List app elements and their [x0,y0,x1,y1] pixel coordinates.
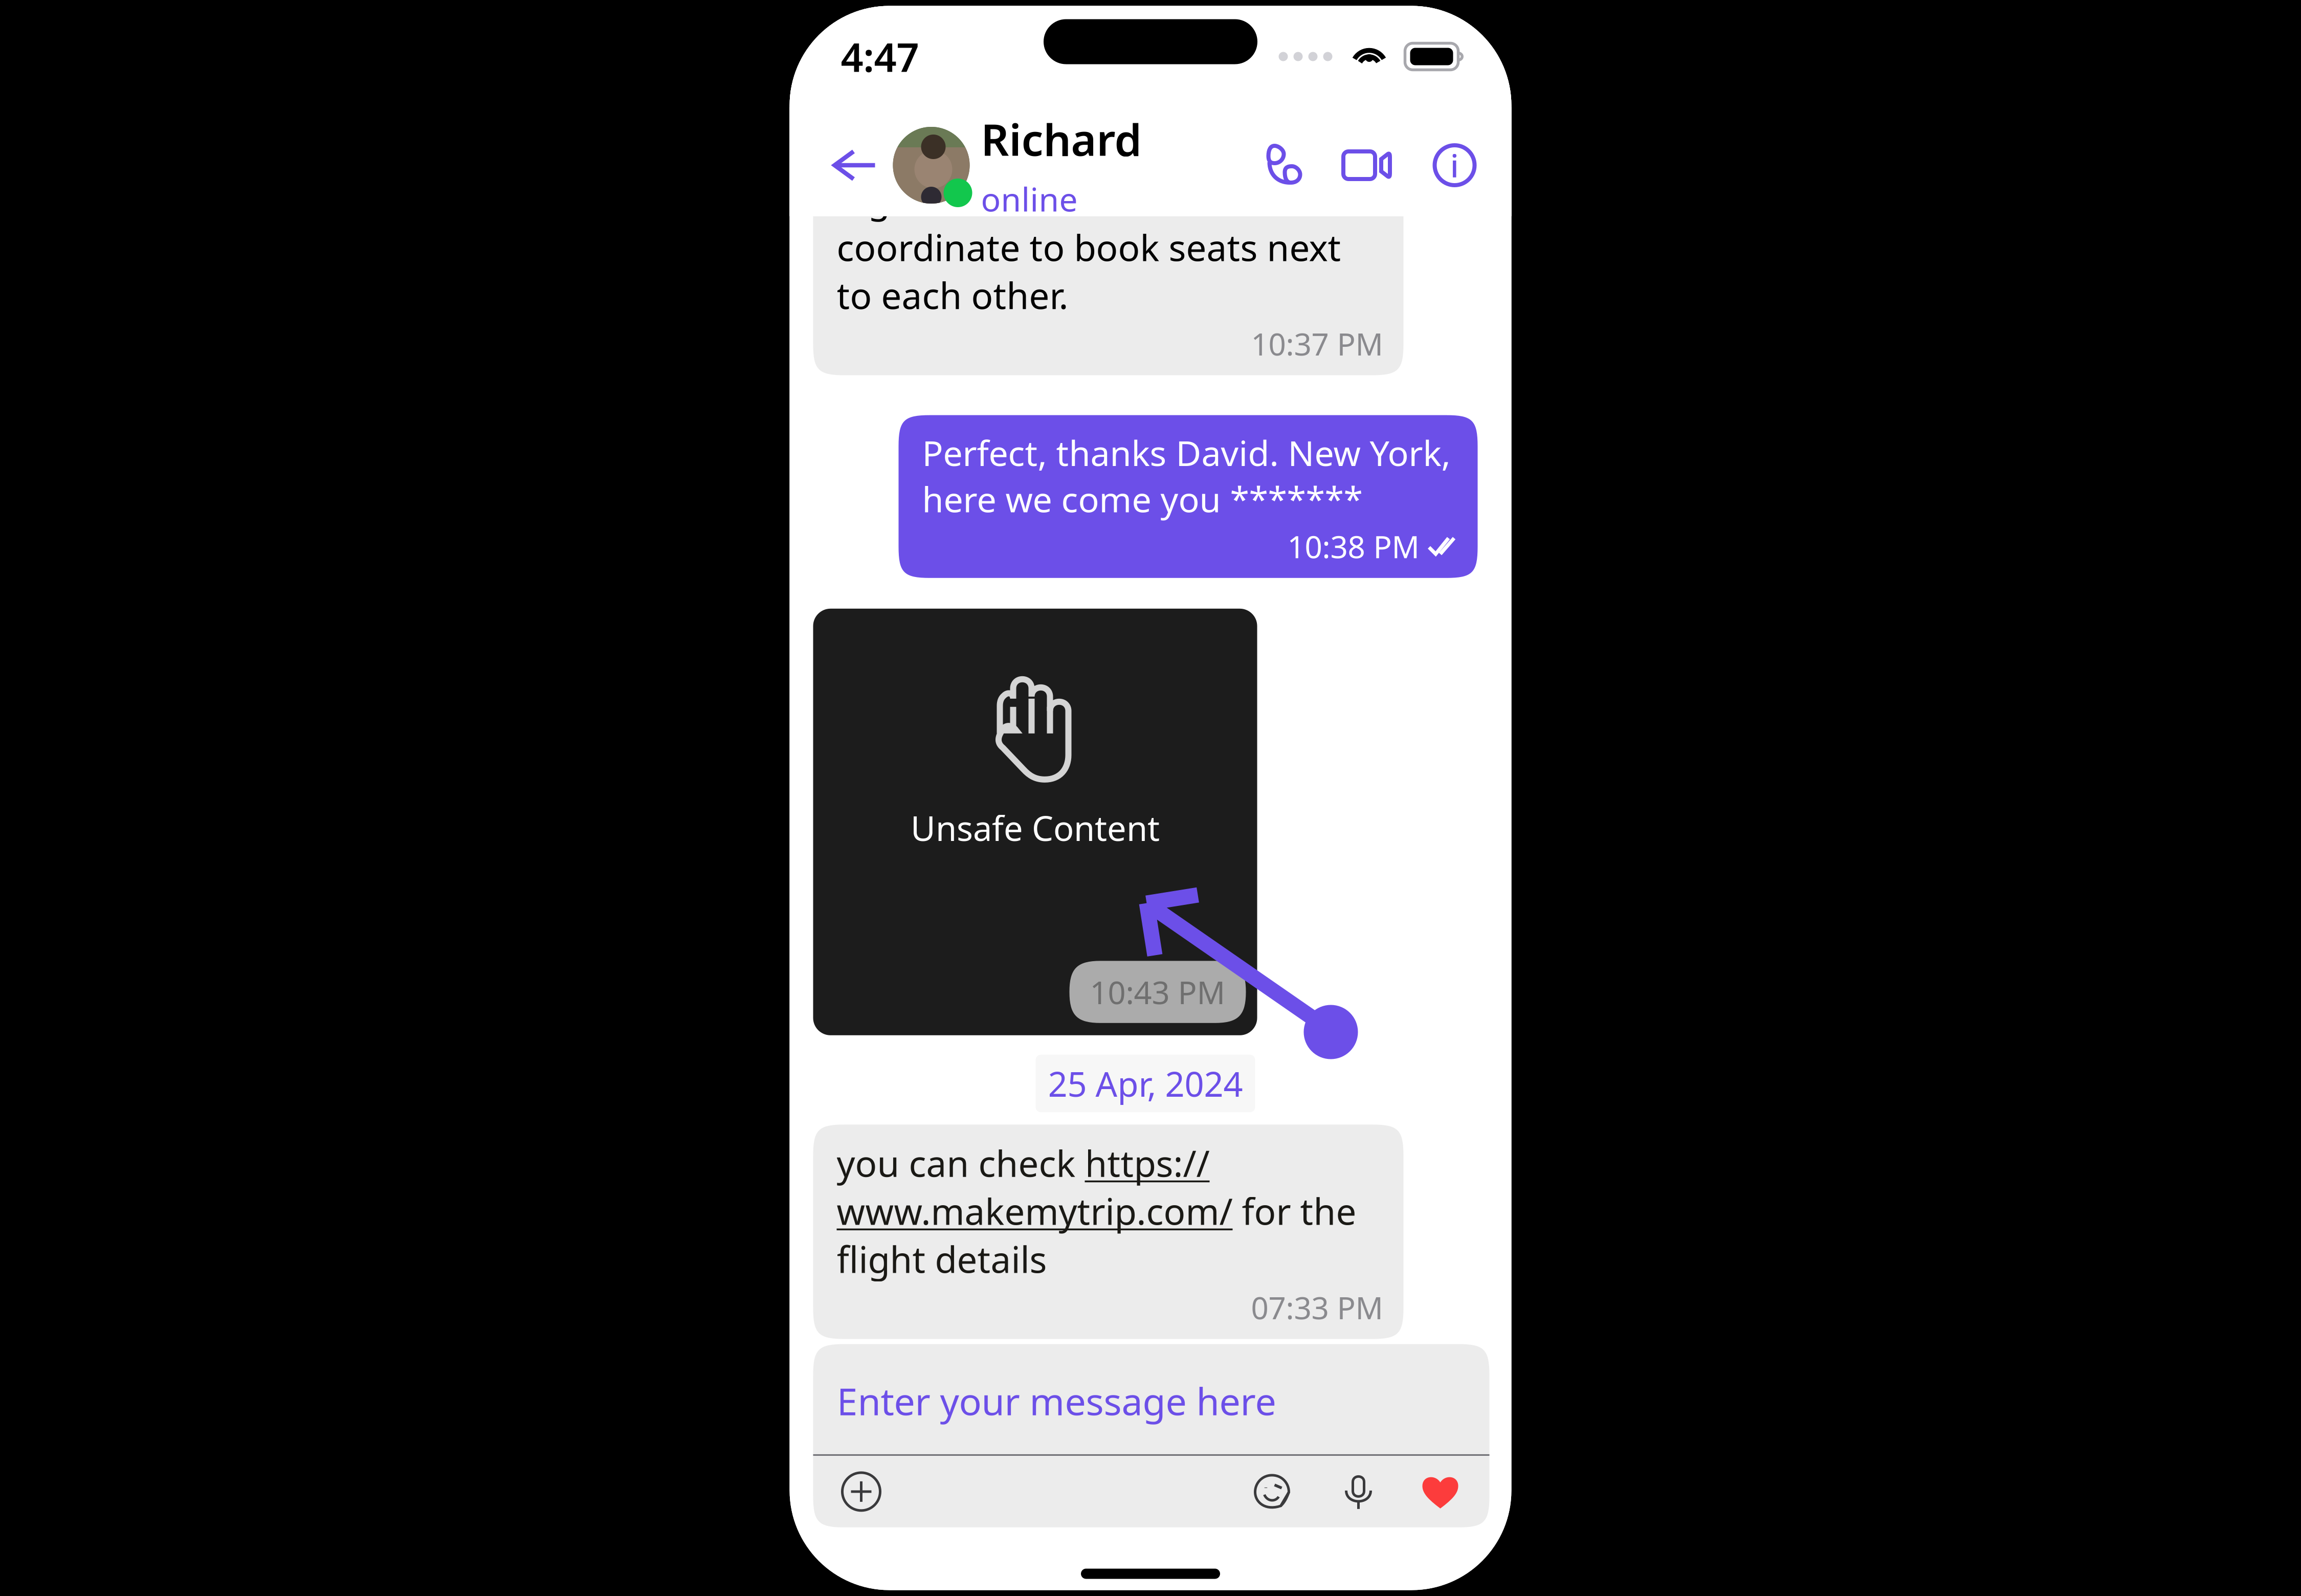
button[interactable]: Voice call [1254,137,1310,193]
staticText: Richard [981,110,1142,168]
button[interactable]: Stickers [1245,1463,1300,1520]
staticText: 25 Apr, 2024 [1048,1061,1243,1106]
button[interactable]: Richard [893,110,1142,221]
button[interactable]: Video call [1340,137,1397,193]
staticText: 10:37 PM [1251,323,1383,364]
button[interactable]: Conversation info [1426,137,1483,193]
staticText: 4:47 [841,30,919,83]
button[interactable]: Add attachment [833,1463,890,1520]
staticText: you can check https://www.makemytrip.com… [837,1139,1356,1283]
staticText: i [1450,144,1459,186]
staticText: 07:33 PM [1251,1287,1383,1328]
staticText: Enter your message here [837,1376,1276,1426]
staticText: Perfect, thanks David. New York, here we… [922,429,1451,522]
staticText: 10:38 PM [1287,526,1419,567]
staticText: Unsafe Content [911,805,1160,850]
button[interactable]: Back [816,132,893,198]
staticText: online [981,177,1078,221]
staticText: 10:43 PM [1090,971,1225,1013]
button[interactable]: Send heart [1413,1463,1468,1520]
button[interactable]: Record voice message [1331,1463,1386,1520]
staticText: Will do. I'll forward you the flight inf… [837,127,1341,319]
